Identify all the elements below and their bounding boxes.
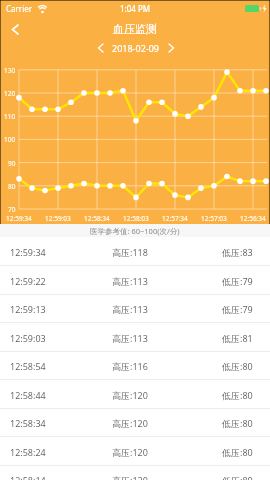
staticText: 低压:80 — [222, 446, 253, 458]
staticText: 低压:80 — [222, 360, 253, 372]
staticText: 12:57:34 — [162, 214, 188, 223]
staticText: 低压:81 — [222, 332, 253, 344]
staticText: 低压:80 — [222, 474, 253, 480]
button[interactable]: 12:58:14 — [0, 465, 270, 480]
staticText: 100 — [4, 135, 16, 144]
staticText: 12:58:34 — [10, 417, 46, 429]
staticText: 120 — [4, 89, 16, 98]
staticText: 高压:120 — [112, 446, 148, 458]
staticText: 1:04 PM — [120, 3, 151, 14]
staticText: 血压监测 — [113, 22, 157, 36]
staticText: 130 — [4, 66, 16, 75]
button[interactable]: 12:59:22 — [0, 266, 270, 295]
button[interactable] — [164, 41, 178, 55]
staticText: Carrier — [6, 3, 33, 14]
button[interactable]: 12:59:03 — [0, 323, 270, 352]
staticText: 高压:113 — [112, 275, 148, 287]
staticText: 高压:116 — [112, 360, 148, 372]
button[interactable] — [6, 20, 24, 38]
staticText: 医学参考值: 60~100(次/分) — [90, 226, 180, 236]
staticText: 12:56:34 — [240, 214, 266, 223]
button[interactable]: 12:58:44 — [0, 380, 270, 409]
staticText: 12:59:13 — [10, 303, 46, 315]
staticText: 12:59:03 — [45, 214, 71, 223]
staticText: 高压:120 — [112, 417, 148, 429]
button[interactable]: 12:59:34 — [0, 237, 270, 266]
staticText: 12:57:03 — [201, 214, 227, 223]
staticText: 低压:80 — [222, 417, 253, 429]
staticText: 70 — [8, 205, 16, 214]
button[interactable]: 12:58:34 — [0, 408, 270, 437]
staticText: 90 — [8, 159, 16, 168]
staticText: 12:58:14 — [10, 474, 46, 480]
staticText: 12:58:24 — [10, 446, 46, 458]
staticText: 高压:118 — [112, 246, 148, 258]
button[interactable]: 12:58:54 — [0, 351, 270, 380]
staticText: 低压:80 — [222, 389, 253, 401]
staticText: 低压:79 — [222, 275, 253, 287]
button[interactable] — [93, 41, 107, 55]
staticText: 80 — [8, 182, 16, 191]
button[interactable]: 12:58:24 — [0, 437, 270, 466]
staticText: 12:58:54 — [10, 360, 46, 372]
staticText: 110 — [4, 112, 16, 121]
staticText: 高压:120 — [112, 389, 148, 401]
button[interactable]: 12:59:13 — [0, 294, 270, 323]
staticText: 12:59:34 — [6, 214, 32, 223]
staticText: 12:58:34 — [84, 214, 110, 223]
staticText: 高压:113 — [112, 332, 148, 344]
staticText: 12:59:34 — [10, 246, 46, 258]
staticText: 2018-02-09 — [112, 42, 159, 54]
staticText: 12:58:03 — [123, 214, 149, 223]
staticText: 12:59:03 — [10, 332, 46, 344]
staticText: 12:59:22 — [10, 275, 46, 287]
staticText: 高压:113 — [112, 303, 148, 315]
staticText: 高压:120 — [112, 474, 148, 480]
staticText: 低压:79 — [222, 303, 253, 315]
staticText: 低压:83 — [222, 246, 253, 258]
staticText: 12:58:44 — [10, 389, 46, 401]
